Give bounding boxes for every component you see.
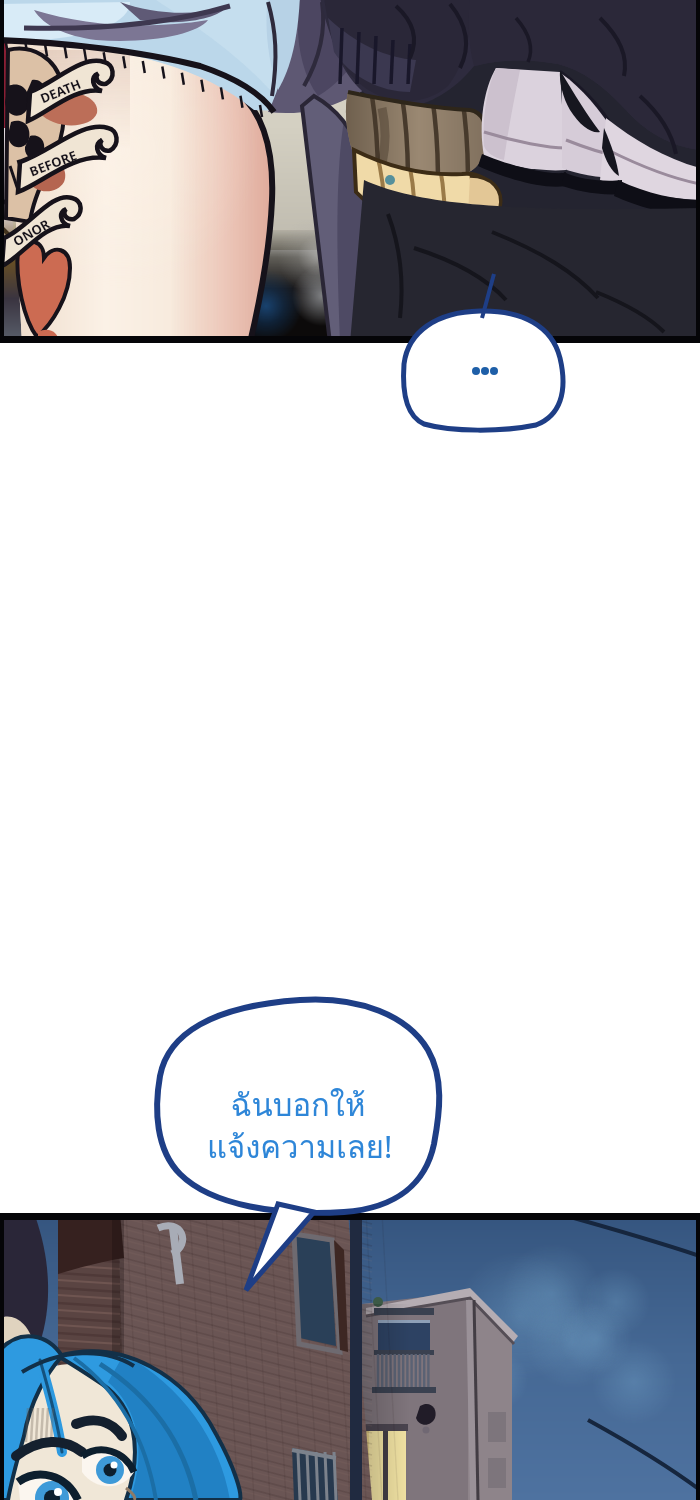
button[interactable]: Comic page, tap to show reader controls [0, 0, 700, 1500]
